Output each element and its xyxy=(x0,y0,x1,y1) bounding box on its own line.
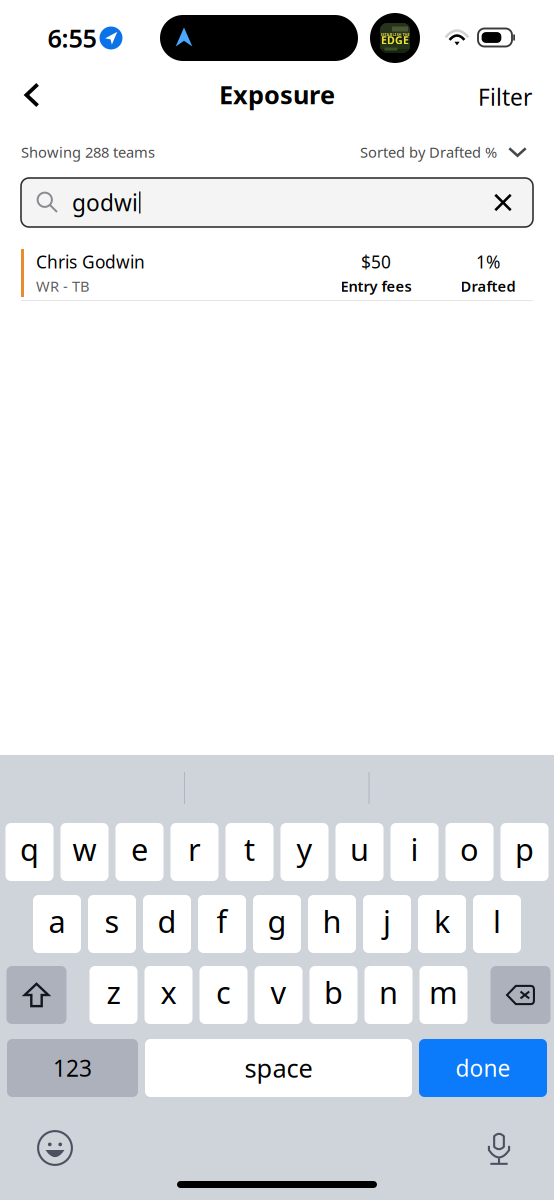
button[interactable]: Delete xyxy=(490,966,550,1024)
staticText: z xyxy=(106,972,120,1012)
staticText: w xyxy=(72,829,96,869)
staticText: n xyxy=(379,972,398,1012)
button[interactable]: Shift xyxy=(6,966,66,1024)
button[interactable]: Back xyxy=(8,73,56,117)
staticText: done xyxy=(455,1053,510,1083)
staticText: j xyxy=(383,901,391,941)
button[interactable]: c xyxy=(199,966,247,1024)
button[interactable]: Emoji keyboard xyxy=(27,1120,83,1176)
button[interactable]: 123 xyxy=(7,1039,138,1097)
staticText: 6:55 xyxy=(47,21,96,55)
staticText: v xyxy=(270,972,286,1012)
button[interactable]: e xyxy=(115,823,163,881)
staticText: WR - TB xyxy=(36,276,90,296)
staticText: p xyxy=(515,829,534,869)
staticText: y xyxy=(296,829,312,869)
button[interactable]: space xyxy=(145,1039,412,1097)
staticText: Entry fees xyxy=(340,276,411,296)
staticText: Drafted xyxy=(460,276,515,296)
staticText: k xyxy=(434,901,450,941)
button[interactable]: x xyxy=(144,966,192,1024)
button[interactable]: o xyxy=(445,823,493,881)
staticText: 123 xyxy=(53,1053,92,1083)
staticText: Sorted by Drafted % xyxy=(360,142,497,162)
staticText: e xyxy=(131,829,148,869)
button[interactable]: Filter xyxy=(468,75,542,119)
staticText: Showing 288 teams xyxy=(21,142,155,162)
staticText: x xyxy=(160,972,176,1012)
button[interactable]: h xyxy=(308,895,356,953)
button[interactable]: d xyxy=(143,895,191,953)
button[interactable]: v xyxy=(254,966,302,1024)
button[interactable]: b xyxy=(309,966,357,1024)
staticText: godwi xyxy=(72,187,138,217)
button[interactable]: w xyxy=(60,823,108,881)
button[interactable]: y xyxy=(280,823,328,881)
button[interactable]: q xyxy=(5,823,53,881)
staticText: Filter xyxy=(478,82,532,112)
staticText: Chris Godwin xyxy=(36,250,145,273)
staticText: r xyxy=(188,829,201,869)
staticText: Exposure xyxy=(219,78,335,111)
button[interactable]: f xyxy=(198,895,246,953)
button[interactable]: j xyxy=(363,895,411,953)
button[interactable]: n xyxy=(364,966,412,1024)
staticText: g xyxy=(267,901,286,941)
staticText: 1% xyxy=(476,250,500,273)
button[interactable]: s xyxy=(88,895,136,953)
staticText: c xyxy=(216,972,231,1012)
button[interactable]: done xyxy=(419,1039,547,1097)
staticText: u xyxy=(350,829,369,869)
staticText: $50 xyxy=(361,250,391,273)
staticText: EDGE xyxy=(381,33,409,47)
button[interactable]: z xyxy=(89,966,137,1024)
staticText: m xyxy=(429,972,458,1012)
button[interactable]: k xyxy=(418,895,466,953)
staticText: t xyxy=(244,829,255,869)
staticText: f xyxy=(216,901,227,941)
button[interactable]: m xyxy=(419,966,467,1024)
staticText: ESTABLISH THE xyxy=(380,32,409,37)
button[interactable]: g xyxy=(253,895,301,953)
staticText: space xyxy=(244,1051,312,1085)
staticText: i xyxy=(410,829,418,869)
button[interactable]: Chris Godwin xyxy=(21,249,533,297)
staticText: d xyxy=(157,901,176,941)
button[interactable]: Dictation xyxy=(471,1120,527,1176)
staticText: a xyxy=(48,901,65,941)
button[interactable]: r xyxy=(170,823,218,881)
button[interactable]: Clear search xyxy=(481,180,525,224)
button[interactable]: i xyxy=(390,823,438,881)
staticText: o xyxy=(460,829,479,869)
staticText: s xyxy=(104,901,119,941)
button[interactable]: t xyxy=(225,823,273,881)
staticText: h xyxy=(322,901,341,941)
staticText: b xyxy=(324,972,343,1012)
button[interactable]: p xyxy=(500,823,548,881)
staticText: l xyxy=(493,901,501,941)
staticText: q xyxy=(20,829,39,869)
button[interactable]: l xyxy=(473,895,521,953)
button[interactable]: u xyxy=(335,823,383,881)
button[interactable]: a xyxy=(33,895,81,953)
button[interactable]: Sorted by Drafted % xyxy=(337,135,527,169)
